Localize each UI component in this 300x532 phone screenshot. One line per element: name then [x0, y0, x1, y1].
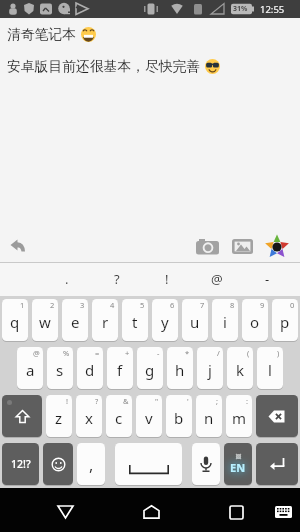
button[interactable]: l: [257, 347, 283, 389]
button[interactable]: a: [17, 347, 43, 389]
staticText: d: [85, 360, 95, 380]
staticText: &: [123, 396, 129, 406]
staticText: 12:55: [260, 3, 285, 16]
button[interactable]: [115, 443, 182, 485]
button[interactable]: [123, 488, 179, 532]
staticText: w: [39, 312, 51, 332]
staticText: 安卓版目前还很基本，尽快完善: [7, 58, 201, 75]
staticText: 2: [50, 300, 55, 310]
button[interactable]: s: [47, 347, 73, 389]
staticText: a: [26, 360, 35, 380]
staticText: ?: [95, 396, 99, 406]
staticText: !: [66, 396, 69, 406]
staticText: 清奇笔记本: [7, 26, 76, 43]
staticText: v: [145, 408, 153, 428]
staticText: x: [85, 408, 93, 428]
button[interactable]: h: [167, 347, 193, 389]
staticText: ,: [89, 454, 94, 476]
staticText: p: [280, 312, 290, 332]
button[interactable]: m: [226, 395, 252, 437]
button[interactable]: x: [76, 395, 102, 437]
button[interactable]: [10, 239, 26, 255]
staticText: g: [145, 360, 155, 380]
button[interactable]: [208, 488, 264, 532]
button[interactable]: [37, 488, 93, 532]
button[interactable]: [192, 443, 220, 485]
button[interactable]: [43, 443, 73, 485]
button[interactable]: [264, 234, 290, 260]
staticText: ;: [216, 396, 219, 406]
button[interactable]: o: [242, 299, 268, 341]
staticText: /: [217, 348, 220, 358]
button[interactable]: i: [212, 299, 238, 341]
button[interactable]: j: [197, 347, 223, 389]
button[interactable]: q: [2, 299, 28, 341]
staticText: :: [246, 396, 249, 406]
button[interactable]: c: [106, 395, 132, 437]
button[interactable]: z: [46, 395, 72, 437]
button[interactable]: [256, 395, 298, 437]
button[interactable]: e: [62, 299, 88, 341]
button[interactable]: f: [107, 347, 133, 389]
staticText: t: [132, 312, 138, 332]
staticText: 31%: [233, 4, 248, 14]
staticText: @: [211, 270, 223, 288]
button[interactable]: p: [272, 299, 298, 341]
button[interactable]: ?: [92, 262, 142, 296]
button[interactable]: [196, 238, 219, 255]
button[interactable]: .: [42, 262, 92, 296]
staticText: m: [232, 408, 247, 428]
staticText: h: [175, 360, 185, 380]
button[interactable]: u: [182, 299, 208, 341]
staticText: EN: [230, 460, 246, 475]
staticText: l: [268, 360, 272, 380]
staticText: .: [65, 270, 69, 288]
staticText: 6: [170, 300, 175, 310]
staticText: 5: [140, 300, 145, 310]
button[interactable]: n: [196, 395, 222, 437]
staticText: 8: [230, 300, 235, 310]
button[interactable]: r: [92, 299, 118, 341]
staticText: 7: [200, 300, 205, 310]
staticText: 12!?: [11, 457, 31, 471]
staticText: =: [95, 348, 100, 358]
button[interactable]: v: [136, 395, 162, 437]
button[interactable]: w: [32, 299, 58, 341]
button[interactable]: b: [166, 395, 192, 437]
staticText: ?: [114, 270, 120, 288]
staticText: +: [125, 348, 130, 358]
button[interactable]: y: [152, 299, 178, 341]
staticText: y: [161, 312, 169, 332]
button[interactable]: k: [227, 347, 253, 389]
button[interactable]: [2, 395, 42, 437]
staticText: 0: [290, 300, 295, 310]
staticText: q: [10, 312, 20, 332]
button[interactable]: g: [137, 347, 163, 389]
staticText: 9: [260, 300, 265, 310]
button[interactable]: t: [122, 299, 148, 341]
staticText: (: [247, 348, 250, 358]
button[interactable]: @: [192, 262, 242, 296]
staticText: n: [204, 408, 214, 428]
staticText: ': [187, 396, 189, 406]
button[interactable]: [232, 239, 253, 254]
staticText: 1: [20, 300, 25, 310]
staticText: c: [115, 408, 123, 428]
staticText: b: [174, 408, 184, 428]
staticText: *: [185, 348, 190, 358]
staticText: k: [236, 360, 245, 380]
button[interactable]: [267, 488, 299, 532]
staticText: f: [117, 360, 123, 380]
staticText: i: [223, 312, 227, 332]
button[interactable]: 12!?: [2, 443, 39, 485]
button[interactable]: ,: [77, 443, 105, 485]
staticText: r: [102, 312, 109, 332]
button[interactable]: d: [77, 347, 103, 389]
button[interactable]: -: [242, 262, 292, 296]
staticText: !: [165, 270, 169, 288]
button[interactable]: EN: [224, 443, 252, 485]
button[interactable]: [256, 443, 298, 485]
button[interactable]: !: [142, 262, 192, 296]
staticText: -: [265, 270, 270, 288]
staticText: ): [277, 348, 280, 358]
